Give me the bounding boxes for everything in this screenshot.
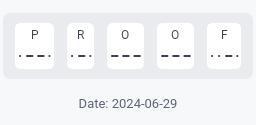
button[interactable]: R xyxy=(67,23,94,69)
staticText: P xyxy=(31,28,39,42)
other: Morse code for P xyxy=(19,55,51,57)
other: Morse code for F xyxy=(211,55,238,57)
staticText: Date: 2024-06-29 xyxy=(0,96,256,111)
button[interactable]: O xyxy=(157,23,194,69)
button[interactable]: P xyxy=(15,23,54,69)
other: Morse code for O xyxy=(161,55,191,57)
staticText: F xyxy=(221,28,228,42)
other: Morse code for R xyxy=(71,55,91,57)
button[interactable]: F xyxy=(207,23,241,69)
staticText: O xyxy=(121,28,130,42)
staticText: O xyxy=(171,28,180,42)
staticText: R xyxy=(77,28,85,42)
other: Morse code for O xyxy=(111,55,141,57)
button[interactable]: O xyxy=(107,23,144,69)
